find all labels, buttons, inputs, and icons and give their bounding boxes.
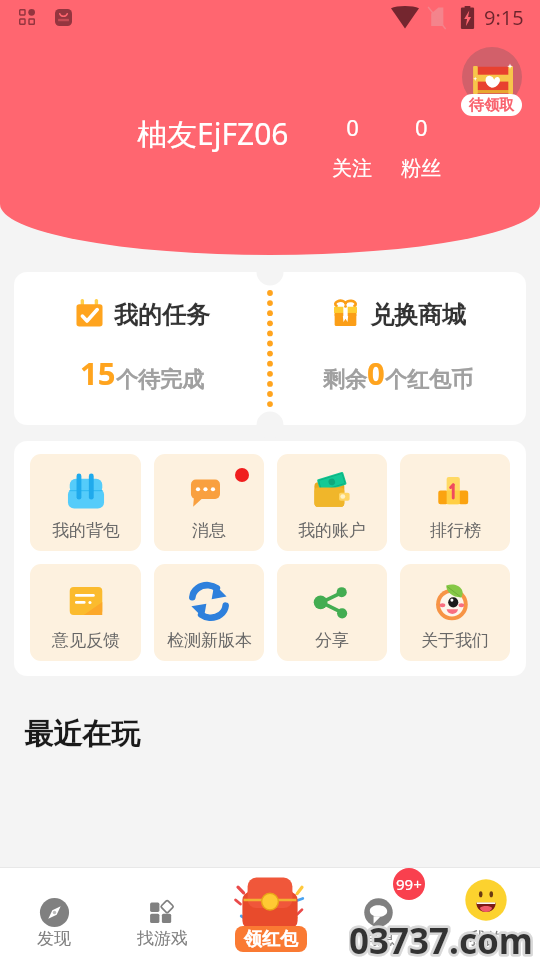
button[interactable]: 我的背包	[30, 454, 141, 551]
staticText: 关注	[332, 156, 372, 181]
staticText: 个红包币	[385, 366, 473, 394]
staticText: 我的背包	[52, 520, 120, 541]
button[interactable]: 消息	[324, 867, 432, 960]
staticText: 我的任务	[114, 300, 210, 330]
button[interactable]: 意见反馈	[30, 564, 141, 661]
staticText: 关于我们	[421, 630, 489, 651]
button[interactable]: 0	[400, 112, 442, 181]
button[interactable]: 找游戏	[108, 867, 216, 960]
staticText: 0	[346, 112, 359, 142]
staticText: 消息	[361, 928, 395, 949]
staticText: 领红包	[244, 928, 298, 951]
staticText: 个待完成	[116, 366, 204, 394]
staticText: 03737.com	[349, 917, 533, 960]
staticText: 我的	[469, 928, 503, 949]
button[interactable]: 我的账户	[277, 454, 387, 551]
staticText: 意见反馈	[52, 630, 120, 651]
staticText: 分享	[315, 630, 349, 651]
button[interactable]: 检测新版本	[154, 564, 264, 661]
staticText: 0	[415, 112, 428, 142]
staticText: 03737.com	[349, 917, 533, 960]
staticText: 找游戏	[137, 928, 188, 949]
staticText: 排行榜	[430, 520, 481, 541]
staticText: 检测新版本	[167, 630, 252, 651]
button[interactable]: 我的	[432, 867, 540, 960]
staticText: 柚友EjFZ06	[137, 113, 289, 154]
staticText: 我的账户	[298, 520, 366, 541]
button[interactable]: 发现	[0, 867, 108, 960]
staticText: 待领取	[469, 96, 514, 115]
button[interactable]: 我的任务	[14, 272, 270, 425]
staticText: 最近在玩	[24, 716, 140, 753]
button[interactable]: 分享	[277, 564, 387, 661]
staticText: 剩余	[323, 366, 367, 394]
staticText: 粉丝	[401, 156, 441, 181]
staticText: 9:15	[484, 4, 524, 31]
staticText: 15	[80, 352, 116, 394]
button[interactable]: 待领取 宝箱	[461, 47, 522, 116]
button[interactable]: 关于我们	[400, 564, 510, 661]
button[interactable]: 消息	[154, 454, 264, 551]
staticText: 99+	[396, 874, 422, 894]
staticText: 兑换商城	[370, 300, 466, 330]
button[interactable]: 兑换商城	[270, 272, 526, 425]
staticText: 消息	[192, 520, 226, 541]
button[interactable]: 排行榜	[400, 454, 510, 551]
staticText: 0	[367, 352, 385, 394]
button[interactable]: 领红包	[216, 860, 324, 960]
staticText: 发现	[37, 928, 71, 949]
button[interactable]: 0	[331, 112, 373, 181]
